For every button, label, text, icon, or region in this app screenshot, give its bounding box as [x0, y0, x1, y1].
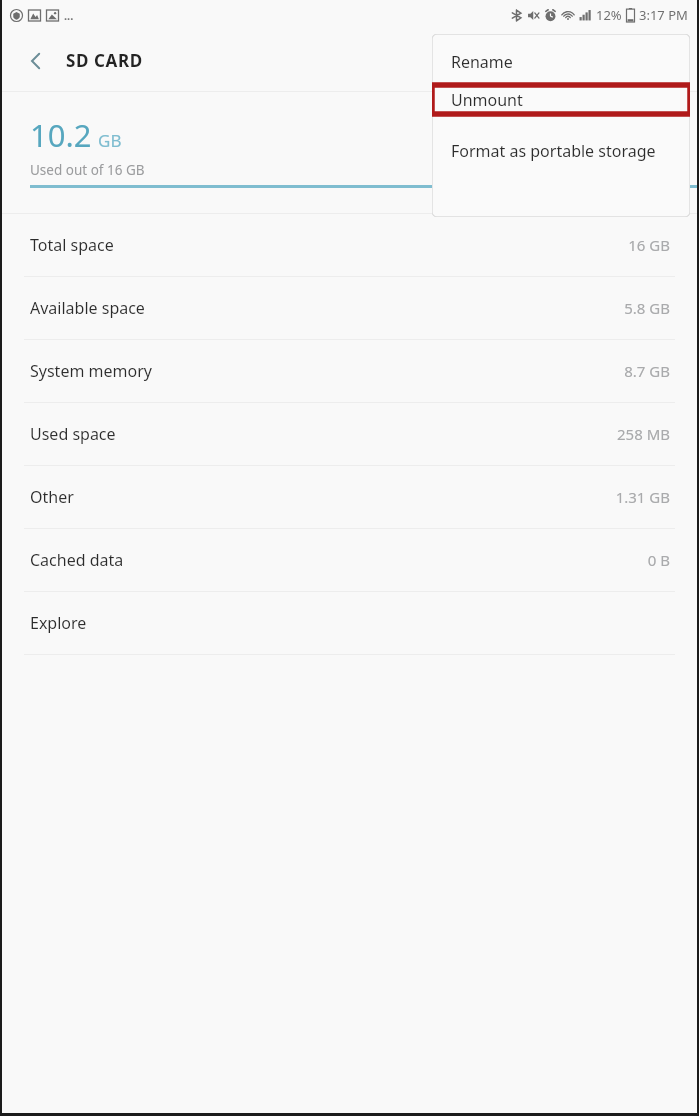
- button[interactable]: Back: [16, 41, 56, 81]
- staticText: ...: [64, 8, 74, 23]
- staticText: System memory: [30, 360, 152, 382]
- button[interactable]: Format as portable storage: [432, 136, 690, 165]
- staticText: Cached data: [30, 549, 124, 571]
- staticText: 16 GB: [628, 235, 670, 255]
- button[interactable]: Cached data: [2, 529, 697, 591]
- staticText: SD CARD: [66, 49, 143, 72]
- staticText: Used out of 16 GB: [30, 161, 145, 179]
- staticText: 0 B: [647, 550, 670, 570]
- staticText: 258 MB: [617, 424, 670, 444]
- staticText: 5.8 GB: [624, 298, 670, 318]
- staticText: Unmount: [451, 89, 523, 111]
- staticText: Explore: [30, 612, 87, 634]
- staticText: GB: [98, 129, 122, 152]
- button[interactable]: Rename: [432, 47, 690, 76]
- button[interactable]: Available space: [2, 277, 697, 339]
- staticText: Available space: [30, 297, 145, 319]
- button[interactable]: Used space: [2, 403, 697, 465]
- staticText: 12%: [596, 6, 622, 24]
- button[interactable]: Other: [2, 466, 697, 528]
- staticText: Other: [30, 486, 74, 508]
- staticText: 3:17 PM: [639, 6, 688, 24]
- button[interactable]: Explore: [2, 592, 697, 654]
- button[interactable]: Unmount: [432, 85, 690, 114]
- staticText: Used space: [30, 423, 116, 445]
- button[interactable]: Total space: [2, 214, 697, 276]
- staticText: 1.31 GB: [615, 487, 670, 507]
- staticText: Rename: [451, 51, 513, 73]
- staticText: 10.2: [30, 114, 92, 156]
- staticText: 8.7 GB: [624, 361, 670, 381]
- staticText: Format as portable storage: [451, 140, 656, 162]
- staticText: Total space: [30, 234, 114, 256]
- button[interactable]: System memory: [2, 340, 697, 402]
